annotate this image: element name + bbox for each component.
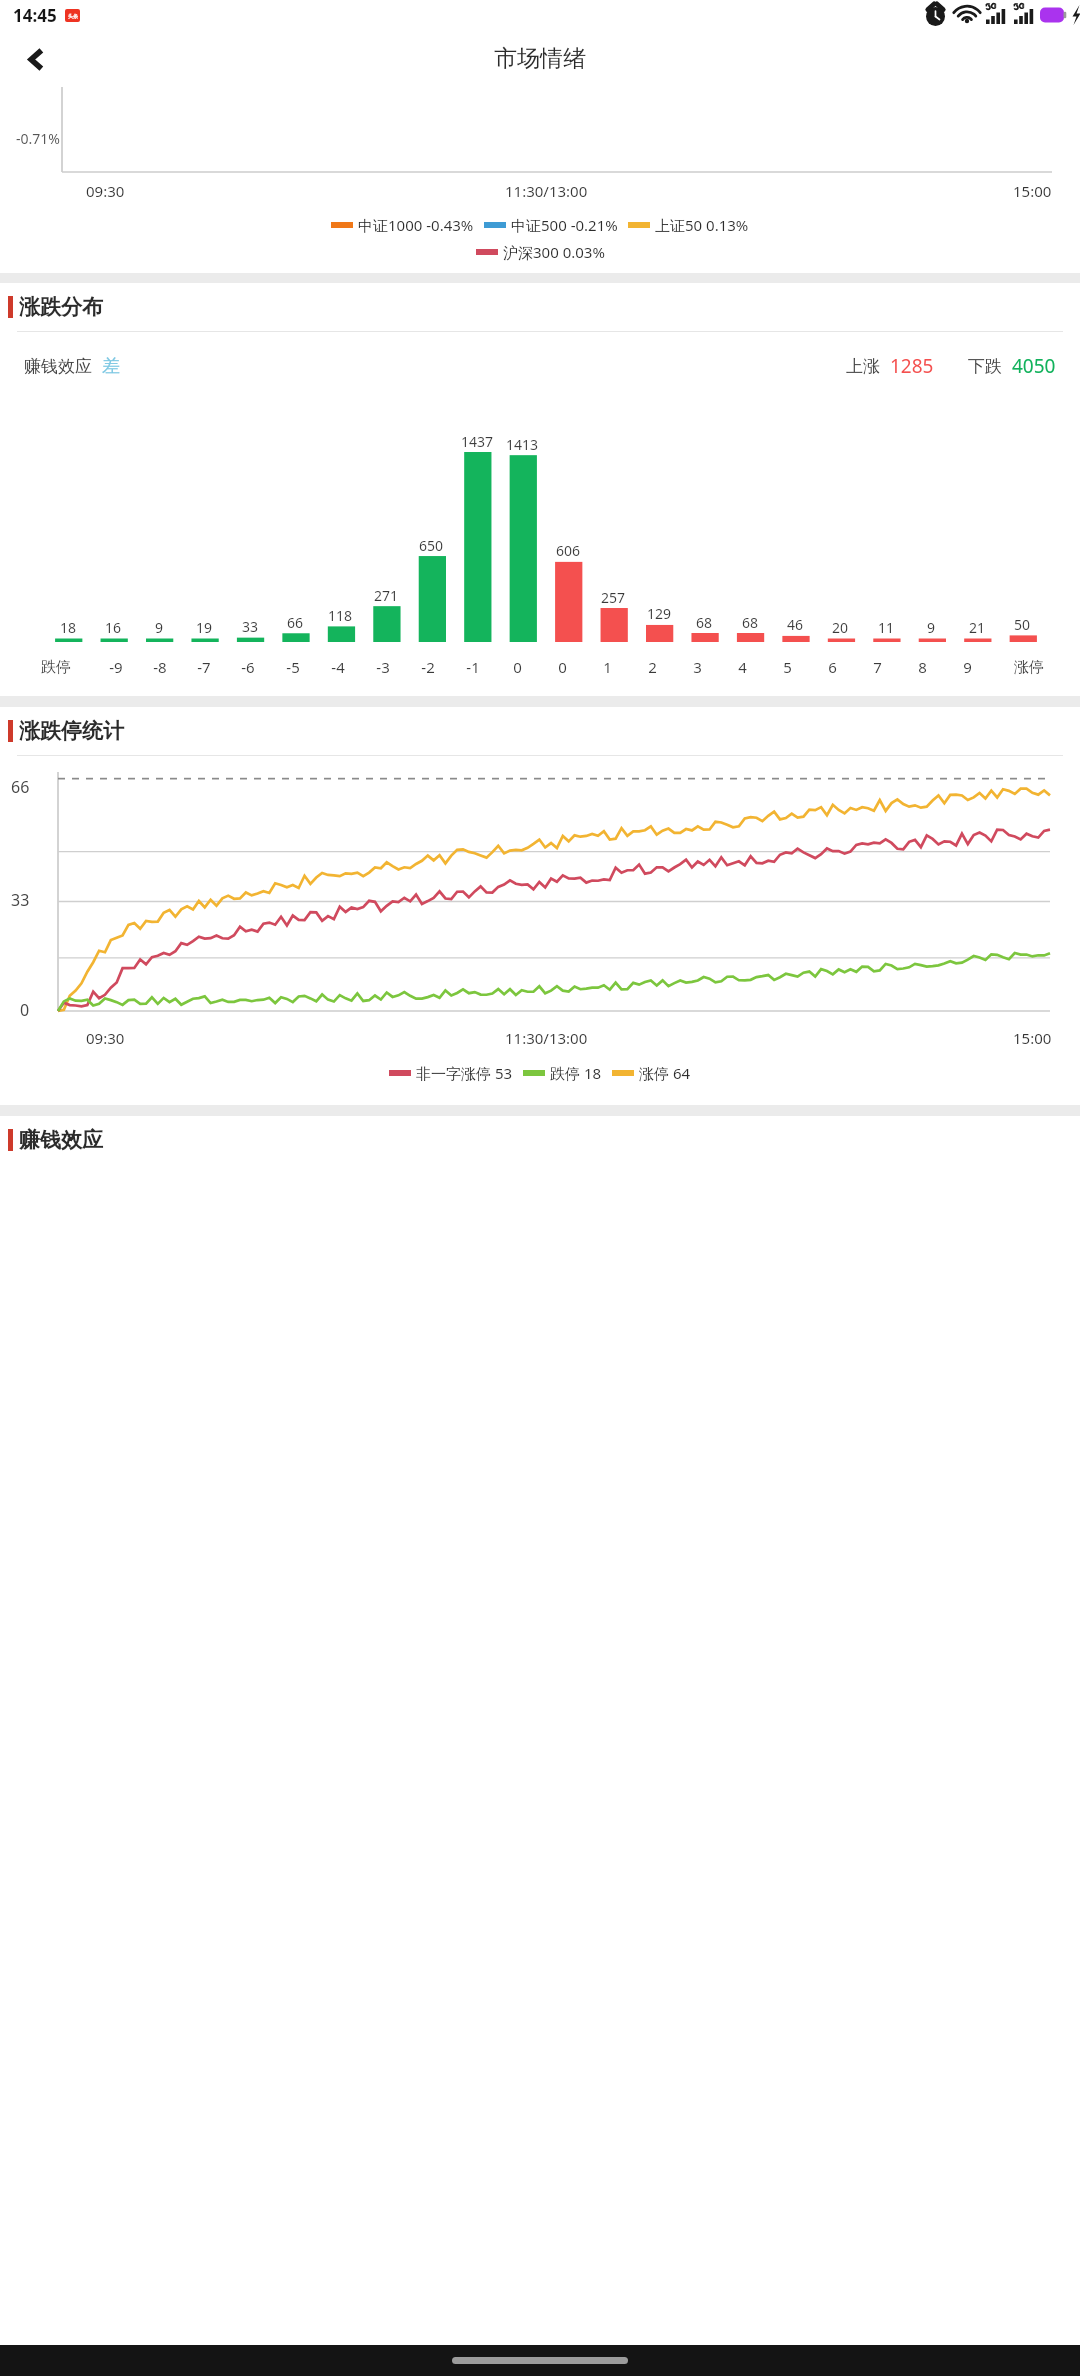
staticText: 14:45 xyxy=(13,4,57,27)
staticText: 头条 xyxy=(68,13,78,19)
staticText: 沪深300 0.03% xyxy=(503,242,605,262)
staticText: 7 xyxy=(873,657,882,677)
button[interactable]: 赚钱效应 xyxy=(0,1116,1080,1164)
staticText: 118 xyxy=(328,606,353,625)
button[interactable]: Back xyxy=(13,36,59,82)
staticText: 21 xyxy=(969,618,986,637)
staticText: 271 xyxy=(374,586,399,605)
staticText: 33 xyxy=(242,617,259,636)
staticText: 差 xyxy=(102,355,120,378)
staticText: -0.71% xyxy=(16,129,60,148)
staticText: 中证1000 -0.43% xyxy=(358,215,474,235)
staticText: 68 xyxy=(696,613,713,632)
staticText: 非一字涨停 53 xyxy=(416,1063,513,1083)
staticText: 129 xyxy=(647,604,672,623)
staticText: 1437 xyxy=(461,432,494,451)
staticText: -4 xyxy=(331,657,345,677)
staticText: -7 xyxy=(197,657,211,677)
button[interactable]: 涨跌分布 xyxy=(0,283,1080,331)
staticText: 606 xyxy=(556,541,581,560)
staticText: -8 xyxy=(153,657,167,677)
staticText: 66 xyxy=(287,613,304,632)
staticText: 4 xyxy=(738,657,747,677)
button[interactable]: 涨跌停统计 xyxy=(0,707,1080,755)
staticText: 1413 xyxy=(506,435,539,454)
staticText: 19 xyxy=(196,618,213,637)
staticText: 涨跌停统计 xyxy=(19,718,124,744)
staticText: 4050 xyxy=(1012,353,1056,379)
staticText: 1285 xyxy=(890,353,934,379)
staticText: 15:00 xyxy=(1013,181,1052,201)
staticText: 9 xyxy=(155,618,164,637)
staticText: 5 xyxy=(783,657,792,677)
staticText: -2 xyxy=(421,657,435,677)
staticText: -6 xyxy=(241,657,255,677)
staticText: 18 xyxy=(60,618,77,637)
staticText: 50 xyxy=(1014,615,1031,634)
staticText: 3 xyxy=(693,657,702,677)
staticText: 257 xyxy=(601,588,626,607)
staticText: 涨停 xyxy=(1014,658,1044,677)
staticText: 0 xyxy=(20,999,30,1021)
staticText: 6 xyxy=(828,657,837,677)
staticText: -3 xyxy=(376,657,390,677)
staticText: 68 xyxy=(742,613,759,632)
staticText: 市场情绪 xyxy=(494,44,586,73)
staticText: 中证500 -0.21% xyxy=(511,215,618,235)
staticText: 赚钱效应 xyxy=(19,1127,103,1153)
staticText: 跌停 xyxy=(41,658,71,677)
staticText: 33 xyxy=(11,889,30,911)
staticText: 1 xyxy=(603,657,612,677)
staticText: -5 xyxy=(286,657,300,677)
staticText: 11:30/13:00 xyxy=(505,1028,588,1048)
staticText: 11 xyxy=(878,618,895,637)
staticText: 涨停 64 xyxy=(639,1063,691,1083)
staticText: -1 xyxy=(466,657,480,677)
staticText: 赚钱效应 xyxy=(24,356,92,377)
staticText: 20 xyxy=(832,618,849,637)
staticText: 09:30 xyxy=(86,181,125,201)
staticText: 9 xyxy=(963,657,972,677)
staticText: 46 xyxy=(787,615,804,634)
staticText: 下跌 xyxy=(968,356,1002,377)
staticText: 8 xyxy=(918,657,927,677)
staticText: 11:30/13:00 xyxy=(505,181,588,201)
staticText: 09:30 xyxy=(86,1028,125,1048)
staticText: 跌停 18 xyxy=(550,1063,602,1083)
staticText: 0 xyxy=(513,657,522,677)
staticText: 16 xyxy=(105,618,122,637)
staticText: 15:00 xyxy=(1013,1028,1052,1048)
staticText: -9 xyxy=(109,657,123,677)
staticText: 9 xyxy=(927,618,936,637)
staticText: 650 xyxy=(419,536,444,555)
staticText: 上涨 xyxy=(846,356,880,377)
staticText: 0 xyxy=(558,657,567,677)
staticText: 涨跌分布 xyxy=(19,294,103,320)
staticText: 2 xyxy=(648,657,657,677)
staticText: 66 xyxy=(11,776,30,798)
staticText: 上证50 0.13% xyxy=(655,215,749,235)
